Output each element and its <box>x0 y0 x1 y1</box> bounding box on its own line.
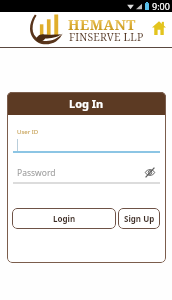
staticText: Password <box>17 167 56 179</box>
staticText: User ID <box>17 128 39 136</box>
staticText: Login <box>53 213 76 224</box>
button[interactable]: Home <box>148 17 169 38</box>
staticText: Sign Up <box>124 213 155 224</box>
staticText: HEMANT <box>68 15 136 34</box>
staticText: 9:00 <box>152 0 170 12</box>
staticText: Log In <box>69 96 104 111</box>
button[interactable]: Show password <box>142 164 158 180</box>
staticText: FINSERVE LLP <box>69 30 144 44</box>
button[interactable]: Sign Up <box>118 208 160 229</box>
button[interactable]: Login <box>12 208 116 229</box>
